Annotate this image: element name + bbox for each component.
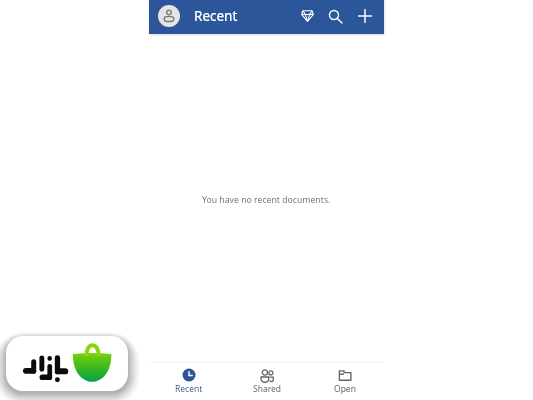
staticText: You have no recent documents.: [202, 194, 331, 206]
button[interactable]: Premium: [294, 3, 320, 29]
button[interactable]: Recent: [149, 363, 228, 400]
button[interactable]: Search: [322, 3, 348, 29]
staticText: Shared: [253, 383, 282, 395]
staticText: Recent: [175, 383, 203, 395]
staticText: Open: [334, 383, 356, 395]
button[interactable]: Add: [352, 3, 378, 29]
button[interactable]: Open: [306, 363, 384, 400]
button[interactable]: Shared: [228, 363, 306, 400]
staticText: Recent: [194, 7, 238, 25]
button[interactable]: Account: [158, 5, 180, 27]
